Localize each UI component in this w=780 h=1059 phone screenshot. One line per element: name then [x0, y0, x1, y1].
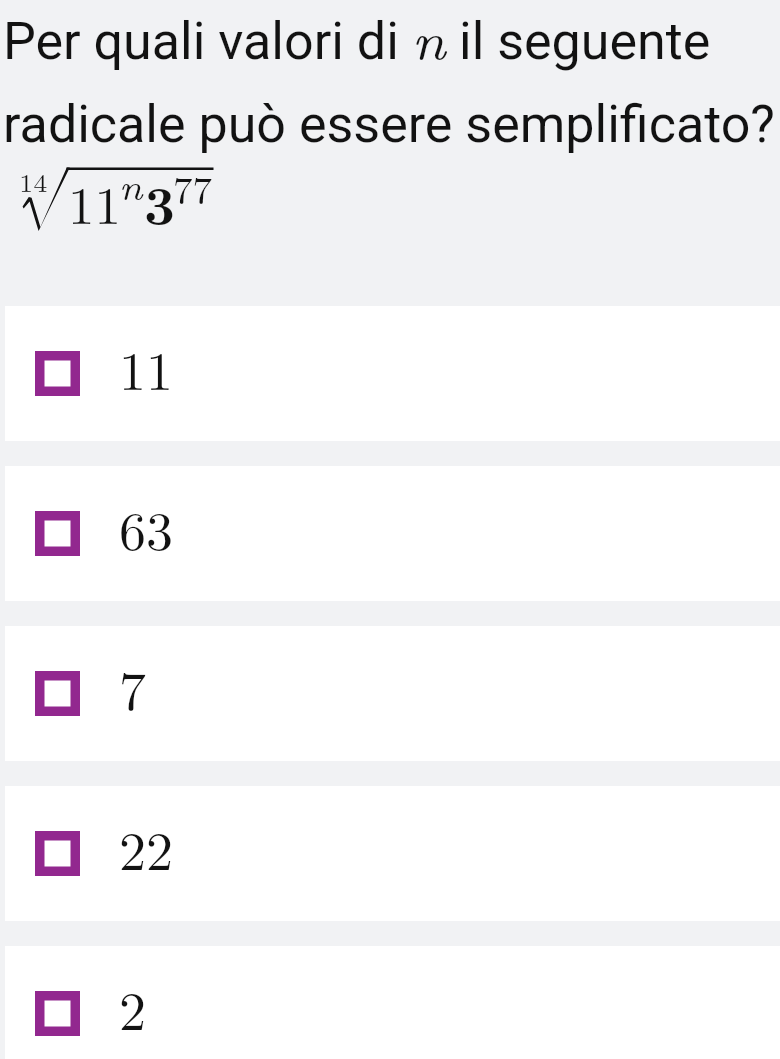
staticText: n [119, 160, 143, 211]
other: Seleziona risposta 63 [35, 511, 80, 556]
staticText: Per quali valori di n il seguente radica… [3, 0, 780, 160]
staticText: 7 [119, 649, 146, 726]
staticText: 11 [68, 164, 121, 239]
other: Seleziona risposta 7 [35, 671, 80, 716]
button[interactable]: Seleziona risposta 7 [5, 626, 780, 761]
staticText: 63 [119, 489, 173, 566]
staticText: 22 [119, 809, 173, 886]
button[interactable]: Seleziona risposta 63 [5, 466, 780, 601]
other: Seleziona risposta 11 [35, 351, 80, 396]
staticText: 11 [119, 329, 173, 406]
button[interactable]: Seleziona risposta 11 [5, 306, 780, 441]
button[interactable]: Seleziona risposta 2 [5, 946, 780, 1059]
staticText: 2 [119, 969, 146, 1046]
staticText: 3 [144, 163, 176, 240]
button[interactable]: Seleziona risposta 22 [5, 786, 780, 921]
other: Seleziona risposta 2 [35, 991, 80, 1036]
staticText: 77 [173, 160, 213, 215]
staticText: 14 [19, 164, 48, 199]
other: Seleziona risposta 22 [35, 831, 80, 876]
